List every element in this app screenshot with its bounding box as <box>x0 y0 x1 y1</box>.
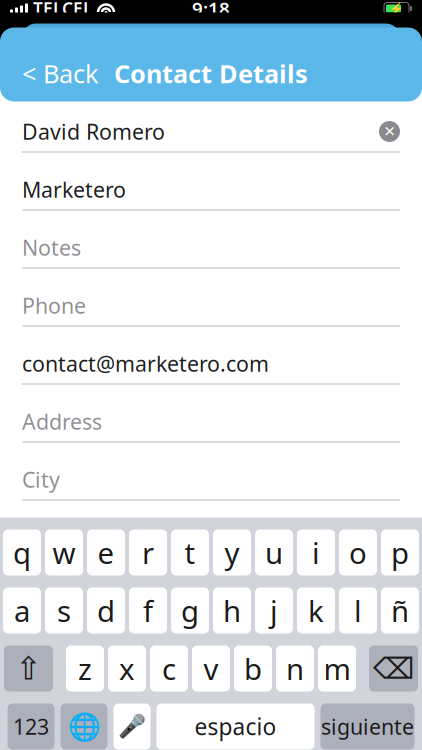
staticText: v <box>203 649 218 688</box>
staticText: b <box>244 649 262 688</box>
button[interactable]: a <box>3 587 41 633</box>
button[interactable]: Dictate <box>113 703 150 749</box>
staticText: 🎤 <box>118 714 146 739</box>
button[interactable]: m <box>318 645 356 691</box>
button[interactable]: h <box>213 587 251 633</box>
staticText: l <box>354 591 362 630</box>
button[interactable]: c <box>150 645 188 691</box>
staticText: ⚡ <box>389 2 404 15</box>
button[interactable]: l <box>339 587 377 633</box>
staticText: j <box>270 591 278 630</box>
staticText: espacio <box>194 711 276 741</box>
staticText: m <box>323 649 350 688</box>
staticText: d <box>97 591 115 630</box>
button[interactable]: siguiente <box>320 703 414 749</box>
button[interactable]: z <box>66 645 104 691</box>
button[interactable]: Next keyboard <box>60 703 107 749</box>
staticText: 9:18 <box>192 0 230 21</box>
staticText: Notes <box>22 233 81 262</box>
staticText: ✕ <box>383 123 395 140</box>
staticText: e <box>97 533 114 572</box>
staticText: x <box>119 649 135 688</box>
staticText: p <box>391 533 409 572</box>
button[interactable]: y <box>213 529 251 575</box>
button[interactable]: t <box>171 529 209 575</box>
staticText: 🌐 <box>67 711 100 742</box>
staticText: t <box>184 533 195 572</box>
staticText: w <box>52 533 75 572</box>
staticText: City <box>22 465 60 494</box>
button[interactable]: Delete <box>369 645 418 691</box>
staticText: f <box>143 591 153 630</box>
button[interactable]: espacio <box>156 703 314 749</box>
staticText: Marketero <box>22 175 126 204</box>
staticText: g <box>181 591 199 630</box>
staticText: r <box>142 533 154 572</box>
staticText: o <box>349 533 367 572</box>
staticText: s <box>57 591 71 630</box>
button[interactable]: q <box>3 529 41 575</box>
staticText: y <box>224 533 239 572</box>
staticText: siguiente <box>321 712 414 741</box>
button[interactable]: u <box>255 529 293 575</box>
button[interactable]: j <box>255 587 293 633</box>
button[interactable]: v <box>192 645 230 691</box>
staticText: Address <box>22 407 102 436</box>
staticText: ⌫ <box>373 652 414 685</box>
staticText: ñ <box>391 591 409 630</box>
button[interactable]: p <box>381 529 419 575</box>
button[interactable]: n <box>276 645 314 691</box>
button[interactable]: b <box>234 645 272 691</box>
staticText: u <box>265 533 283 572</box>
button[interactable]: f <box>129 587 167 633</box>
button[interactable]: g <box>171 587 209 633</box>
button[interactable]: ñ <box>381 587 419 633</box>
staticText: k <box>308 591 324 630</box>
button[interactable]: o <box>339 529 377 575</box>
button[interactable]: Shift <box>4 645 53 691</box>
button[interactable]: Clear text <box>379 121 400 142</box>
staticText: c <box>162 649 176 688</box>
staticText: h <box>223 591 241 630</box>
button[interactable]: < Back <box>12 49 109 98</box>
staticText: n <box>286 649 304 688</box>
staticText: Contact Details <box>114 57 308 90</box>
button[interactable]: x <box>108 645 146 691</box>
staticText: i <box>312 533 320 572</box>
staticText: David Romero <box>22 117 165 146</box>
staticText: a <box>14 591 30 630</box>
button[interactable]: i <box>297 529 335 575</box>
button[interactable]: s <box>45 587 83 633</box>
staticText: Phone <box>22 291 86 320</box>
staticText: contact@marketero.com <box>22 349 269 378</box>
staticText: ⇧ <box>15 650 42 687</box>
staticText: < Back <box>22 57 99 90</box>
staticText: z <box>78 649 92 688</box>
button[interactable]: d <box>87 587 125 633</box>
staticText: TELCEL <box>33 0 92 20</box>
staticText: q <box>13 533 31 572</box>
button[interactable]: w <box>45 529 83 575</box>
button[interactable]: k <box>297 587 335 633</box>
button[interactable]: r <box>129 529 167 575</box>
staticText: 123 <box>13 712 49 741</box>
button[interactable]: 123 <box>7 703 54 749</box>
button[interactable]: e <box>87 529 125 575</box>
